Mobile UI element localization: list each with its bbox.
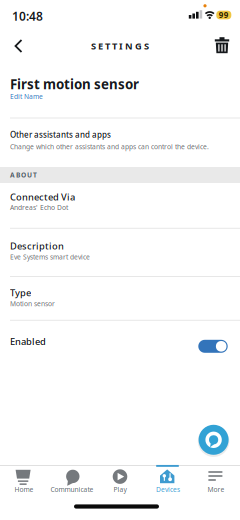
staticText: A B O U T [10, 171, 37, 179]
staticText: Edit Name [10, 92, 43, 101]
staticText: Enabled [10, 335, 46, 348]
button[interactable]: Edit Name [10, 92, 54, 101]
button[interactable]: Devices [144, 465, 192, 520]
staticText: Type [10, 286, 31, 299]
button[interactable]: Delete device [209, 33, 235, 59]
button[interactable]: Communicate [48, 465, 96, 520]
staticText: Other assistants and apps [10, 129, 111, 140]
staticText: 99 [219, 10, 229, 20]
staticText: S E T T I N G S [91, 40, 149, 52]
staticText: Play [113, 485, 126, 494]
staticText: First motion sensor [10, 75, 139, 93]
button[interactable]: Alexa [196, 422, 232, 458]
button[interactable]: Enabled [198, 339, 228, 353]
button[interactable]: Play [96, 465, 144, 520]
staticText: 10:48 [12, 8, 43, 24]
button[interactable]: Back [3, 32, 33, 60]
staticText: Devices [156, 485, 180, 494]
button[interactable]: More [192, 465, 240, 520]
staticText: Andreas' Echo Dot [10, 203, 68, 212]
staticText: Home [14, 485, 33, 494]
staticText: More [207, 485, 224, 494]
staticText: Motion sensor [10, 299, 55, 308]
staticText: Change which other assistants and apps c… [10, 142, 209, 151]
staticText: Description [10, 240, 64, 252]
staticText: Eve Systems smart device [10, 253, 90, 261]
button[interactable]: Other assistants and apps [10, 129, 240, 151]
staticText: Connected Via [10, 191, 75, 203]
button[interactable]: Home [0, 465, 48, 520]
staticText: Communicate [50, 485, 93, 494]
